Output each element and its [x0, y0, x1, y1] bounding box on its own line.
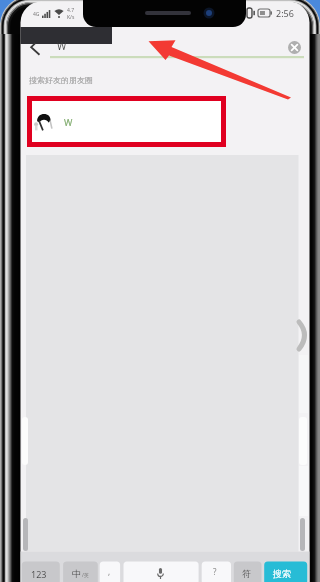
staticText: 123 — [31, 568, 47, 580]
staticText: ? — [213, 566, 217, 577]
button[interactable]: Clear — [288, 41, 301, 54]
staticText: W — [64, 116, 73, 128]
staticText: 搜索好友的朋友圈 — [29, 75, 93, 85]
button[interactable]: Back — [27, 40, 43, 56]
staticText: 搜索 — [273, 568, 291, 579]
staticText: , — [108, 566, 111, 577]
staticText: 2:56 — [276, 7, 294, 19]
staticText: /英 — [82, 572, 89, 579]
staticText: K/s — [67, 14, 75, 21]
button[interactable]: W — [32, 101, 221, 142]
staticText: 中 — [72, 568, 81, 579]
staticText: 符 — [242, 568, 251, 579]
staticText: W — [57, 39, 67, 53]
staticText: 4.7 — [67, 7, 75, 14]
staticText: 4G — [33, 11, 40, 18]
